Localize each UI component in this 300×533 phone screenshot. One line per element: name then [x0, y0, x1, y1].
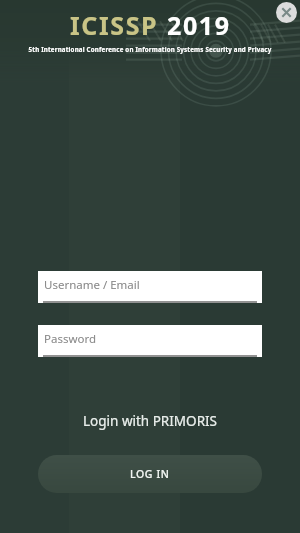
- button[interactable]: Username / Email: [38, 271, 262, 303]
- button[interactable]: LOG IN: [38, 455, 262, 493]
- staticText: Username / Email: [44, 277, 140, 293]
- staticText: Password: [44, 331, 97, 347]
- staticText: LOG IN: [130, 467, 170, 481]
- button[interactable]: Close: [276, 2, 297, 23]
- staticText: ICISSP: [70, 8, 159, 42]
- staticText: 2019: [167, 8, 231, 42]
- button[interactable]: Password: [38, 325, 262, 357]
- staticText: 5th International Conference on Informat…: [18, 45, 282, 53]
- staticText: Login with PRIMORIS: [83, 412, 218, 430]
- button[interactable]: Login with PRIMORIS: [0, 408, 300, 434]
